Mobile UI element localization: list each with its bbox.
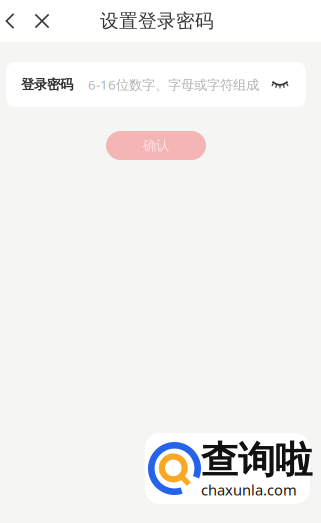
button[interactable]: 确认: [106, 131, 206, 160]
button[interactable]: Back: [0, 0, 20, 42]
staticText: 确认: [143, 137, 169, 154]
staticText: chaxunla.com: [201, 480, 297, 500]
staticText: 登录密码: [21, 76, 73, 93]
button[interactable]: Close: [28, 0, 56, 42]
staticText: 查询啦: [201, 437, 312, 483]
button[interactable]: Show password: [268, 62, 292, 107]
button[interactable]: 登录密码: [6, 62, 268, 107]
staticText: 6-16位数字、字母或字符组成: [88, 76, 259, 93]
staticText: 设置登录密码: [100, 9, 214, 32]
